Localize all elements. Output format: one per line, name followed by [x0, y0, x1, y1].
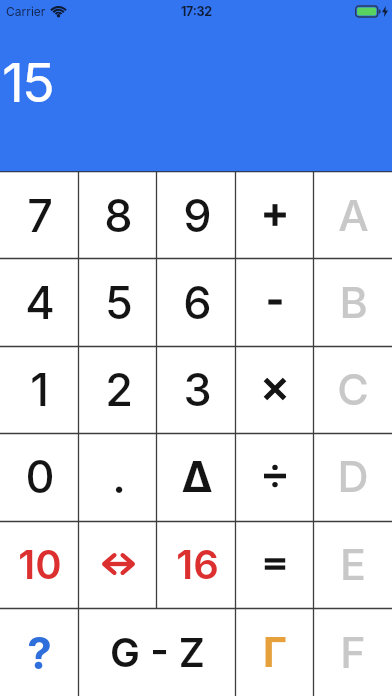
staticText: 5 — [105, 275, 133, 329]
button[interactable]: . — [79, 432, 158, 520]
button[interactable]: 1 — [0, 345, 79, 432]
button[interactable]: 0 — [0, 432, 79, 520]
button[interactable] — [236, 258, 314, 345]
button[interactable]: 6 — [158, 258, 236, 345]
button[interactable]: 3 — [158, 345, 236, 432]
button[interactable] — [236, 345, 314, 432]
staticText: 1 — [30, 362, 49, 416]
button[interactable]: A — [314, 171, 392, 258]
staticText: Carrier — [6, 4, 46, 19]
staticText: 0 — [25, 449, 55, 503]
button[interactable]: Δ — [158, 432, 236, 520]
staticText: Δ — [181, 451, 213, 502]
staticText: 16 — [176, 540, 219, 588]
button[interactable]: 5 — [79, 258, 158, 345]
button[interactable]: D — [314, 432, 392, 520]
staticText: A — [338, 189, 369, 241]
staticText: 17:32 — [181, 4, 212, 19]
button[interactable] — [236, 432, 314, 520]
staticText: B — [339, 276, 368, 328]
staticText: D — [337, 450, 369, 502]
staticText: 9 — [183, 188, 212, 242]
button[interactable]: 2 — [79, 345, 158, 432]
staticText: Γ — [263, 627, 287, 677]
button[interactable]: E — [314, 520, 392, 608]
staticText: 2 — [105, 362, 133, 416]
staticText: 15 — [2, 50, 53, 115]
staticText: E — [340, 538, 366, 590]
button[interactable] — [236, 520, 314, 608]
staticText: 4 — [25, 275, 55, 329]
button[interactable]: 10 — [0, 520, 79, 608]
button[interactable]: Γ — [236, 608, 314, 696]
staticText: C — [337, 363, 369, 415]
staticText: 7 — [27, 188, 53, 242]
button[interactable]: C — [314, 345, 392, 432]
button[interactable]: 16 — [158, 520, 236, 608]
staticText: 8 — [104, 188, 133, 242]
button[interactable]: 8 — [79, 171, 158, 258]
button[interactable]: 7 — [0, 171, 79, 258]
button[interactable]: 9 — [158, 171, 236, 258]
button[interactable]: G - Z — [79, 608, 236, 696]
staticText: F — [340, 626, 366, 678]
staticText: 6 — [183, 275, 212, 329]
staticText: G - Z — [110, 628, 205, 676]
button[interactable]: F — [314, 608, 392, 696]
button[interactable]: ? — [0, 608, 79, 696]
button[interactable]: B — [314, 258, 392, 345]
staticText: ? — [27, 626, 52, 679]
staticText: 10 — [18, 540, 62, 588]
button[interactable] — [79, 520, 158, 608]
button[interactable] — [236, 171, 314, 258]
staticText: 3 — [183, 362, 212, 416]
staticText: . — [112, 449, 126, 503]
button[interactable]: 4 — [0, 258, 79, 345]
